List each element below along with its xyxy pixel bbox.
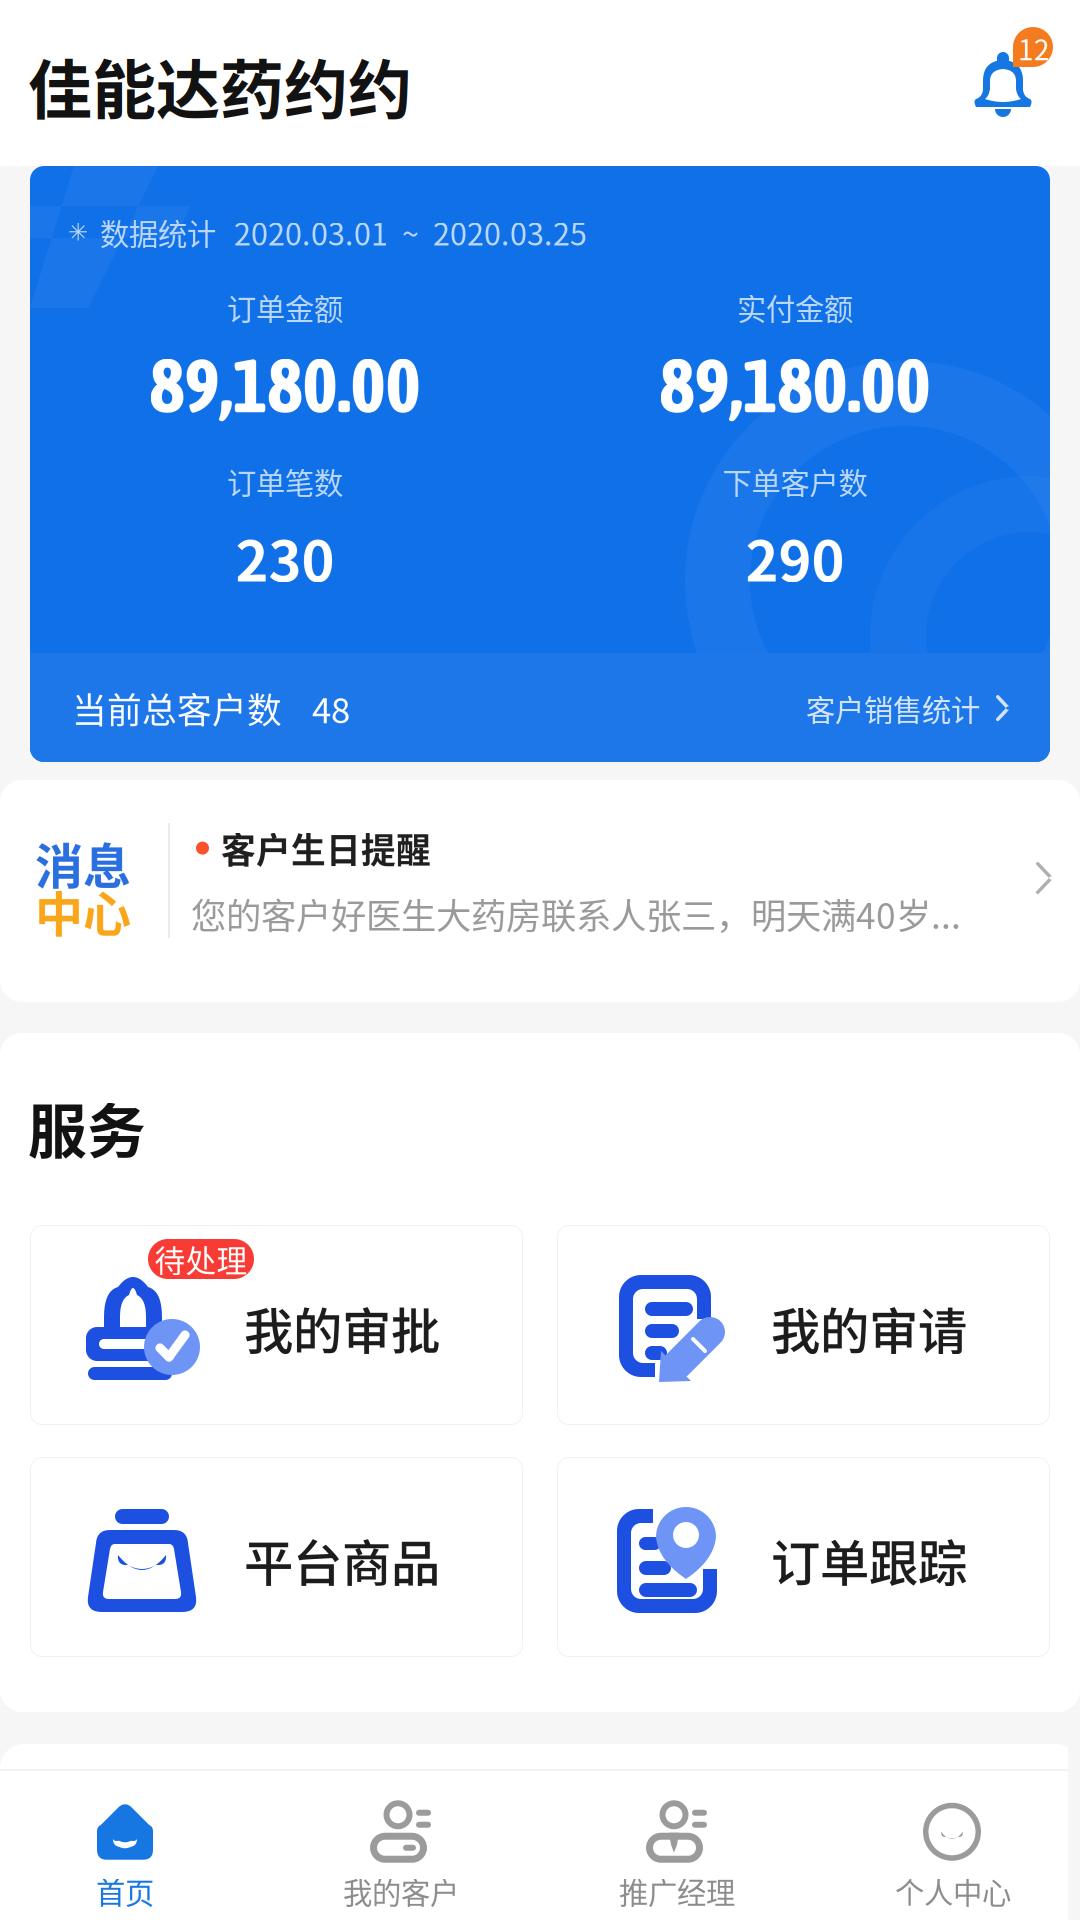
staticText: 待处理 xyxy=(154,1237,247,1281)
staticText: 订单金额 xyxy=(227,286,343,328)
staticText: 下单客户数 xyxy=(722,460,867,502)
staticText: 客户销售统计 xyxy=(806,687,980,729)
staticText: 推广经理 xyxy=(619,1870,735,1912)
button[interactable]: 消息 xyxy=(0,780,1080,1002)
button[interactable]: 我的客户 xyxy=(263,1768,539,1920)
staticText: 当前总客户数 xyxy=(72,683,282,733)
button[interactable]: 个人中心 xyxy=(815,1768,1080,1920)
staticText: 89,180.00 xyxy=(149,342,420,428)
staticText: 2020.03.01 ~ 2020.03.25 xyxy=(234,210,587,254)
button[interactable]: 通知 xyxy=(960,10,1080,140)
button[interactable]: 订单跟踪 xyxy=(557,1457,1050,1657)
staticText: 89,180.00 xyxy=(659,342,930,428)
staticText: 48 xyxy=(312,683,350,733)
staticText: 平台商品 xyxy=(244,1524,440,1595)
staticText: 12 xyxy=(1018,28,1050,68)
staticText: 实付金额 xyxy=(737,286,853,328)
staticText: 消息 xyxy=(35,828,131,897)
button[interactable]: 首页 xyxy=(0,1768,263,1920)
staticText: 我的审请 xyxy=(771,1292,967,1363)
staticText: 中心 xyxy=(35,876,131,945)
staticText: 订单笔数 xyxy=(227,460,343,502)
button[interactable]: 我的审批 xyxy=(30,1225,523,1425)
staticText: ✳ xyxy=(68,218,88,246)
staticText: 您的客户好医生大药房联系人张三，明天满40岁... xyxy=(191,888,961,939)
staticText: 数据统计 xyxy=(100,211,216,253)
staticText: 个人中心 xyxy=(895,1870,1011,1912)
staticText: 客户生日提醒 xyxy=(221,823,431,873)
button[interactable]: 我的审请 xyxy=(557,1225,1050,1425)
staticText: 230 xyxy=(235,516,334,598)
staticText: 我的客户 xyxy=(343,1870,459,1912)
staticText: 服务 xyxy=(28,1085,146,1170)
staticText: 订单跟踪 xyxy=(771,1524,967,1595)
button[interactable]: 平台商品 xyxy=(30,1457,523,1657)
staticText: 首页 xyxy=(96,1870,154,1912)
staticText: 我的审批 xyxy=(244,1292,440,1363)
button[interactable]: 当前总客户数 xyxy=(30,653,1050,762)
staticText: 290 xyxy=(745,516,844,598)
button[interactable]: 推广经理 xyxy=(539,1768,815,1920)
staticText: 佳能达药约约 xyxy=(28,39,412,132)
